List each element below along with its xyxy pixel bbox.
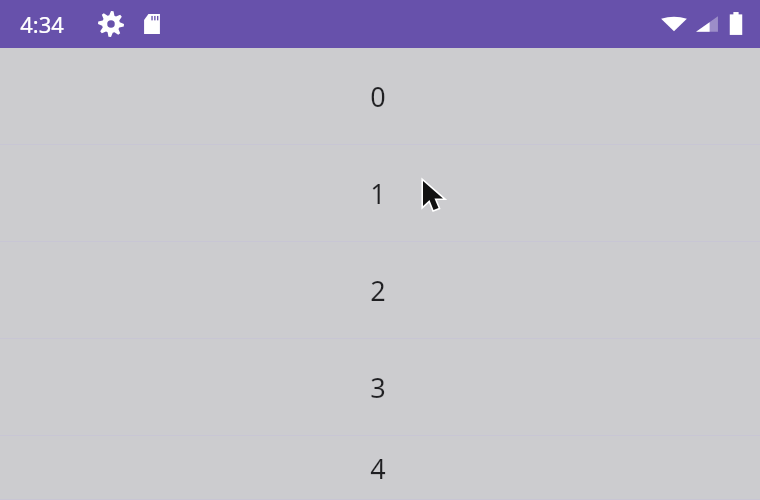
button[interactable]: 3 — [0, 339, 760, 436]
button[interactable]: 2 — [0, 242, 760, 339]
button[interactable]: Settings — [98, 11, 124, 37]
button[interactable]: 0 — [0, 48, 760, 145]
button[interactable]: 1 — [0, 145, 760, 242]
staticText: 1 — [370, 175, 386, 212]
button[interactable]: SD card — [140, 12, 164, 36]
staticText: 3 — [370, 369, 386, 406]
staticText: 2 — [370, 272, 386, 309]
staticText: 4 — [370, 450, 386, 487]
staticText: 0 — [370, 78, 386, 115]
button[interactable]: 4 — [0, 436, 760, 500]
staticText: 4:34 — [20, 9, 64, 39]
